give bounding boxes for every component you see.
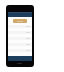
button[interactable] [8, 31, 32, 34]
button[interactable] [8, 25, 32, 28]
button[interactable] [13, 19, 27, 23]
button[interactable] [8, 43, 32, 46]
button[interactable] [8, 49, 32, 52]
button[interactable] [8, 37, 32, 40]
button[interactable] [8, 12, 32, 17]
